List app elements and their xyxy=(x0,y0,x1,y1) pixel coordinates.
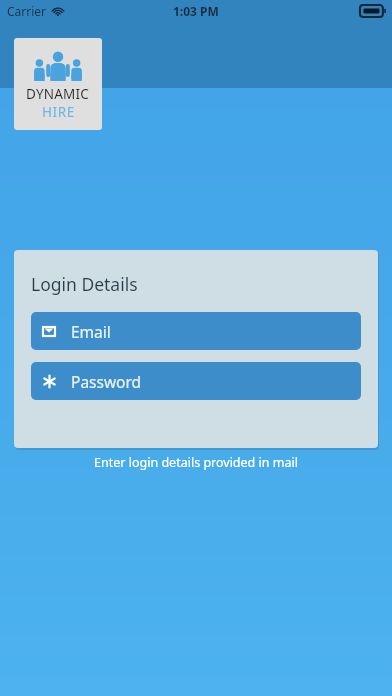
staticText: Email xyxy=(71,321,111,342)
staticText: 1:03 PM xyxy=(173,3,219,19)
button[interactable]: Password icon xyxy=(31,362,361,400)
other: Email icon xyxy=(41,323,57,339)
button[interactable]: DYNAMIC xyxy=(14,38,102,130)
staticText: Carrier xyxy=(7,3,47,19)
staticText: Login Details xyxy=(31,272,138,296)
button[interactable]: Email icon xyxy=(31,312,361,350)
staticText: HIRE xyxy=(42,103,75,121)
other: Password icon xyxy=(41,373,57,389)
staticText: Enter login details provided in mail xyxy=(94,454,298,471)
staticText: DYNAMIC xyxy=(26,85,90,103)
staticText: Password xyxy=(71,371,142,392)
